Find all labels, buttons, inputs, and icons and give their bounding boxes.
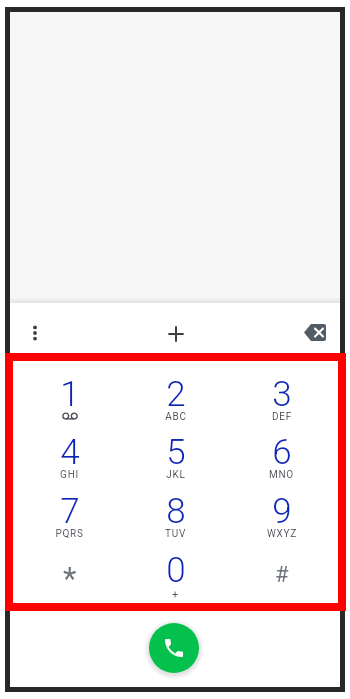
staticText: 6 bbox=[272, 432, 292, 473]
staticText: 9 bbox=[272, 491, 292, 532]
staticText: DEF bbox=[272, 411, 292, 423]
staticText: TUV bbox=[165, 528, 186, 540]
staticText: 3 bbox=[272, 374, 292, 415]
button[interactable]: 3 bbox=[229, 374, 334, 433]
staticText: 5 bbox=[166, 432, 186, 473]
button[interactable]: 9 bbox=[229, 491, 334, 550]
button[interactable]: 4 bbox=[17, 432, 122, 491]
staticText: # bbox=[275, 562, 289, 588]
button[interactable]: 8 bbox=[123, 491, 228, 550]
button[interactable]: 1 bbox=[17, 374, 122, 433]
staticText: 8 bbox=[166, 491, 186, 532]
button[interactable]: 7 bbox=[17, 491, 122, 550]
staticText: 0 bbox=[166, 550, 186, 591]
staticText: JKL bbox=[166, 469, 186, 481]
button[interactable]: Backspace bbox=[298, 315, 332, 349]
button[interactable]: 0 bbox=[123, 550, 228, 609]
staticText: + bbox=[172, 588, 179, 601]
staticText: 7 bbox=[60, 491, 80, 532]
staticText: GHI bbox=[60, 469, 79, 481]
button[interactable]: star bbox=[17, 560, 122, 590]
staticText: 1 bbox=[60, 374, 80, 415]
button[interactable]: 2 bbox=[123, 374, 228, 433]
button[interactable]: pound bbox=[229, 562, 334, 592]
staticText: PQRS bbox=[55, 528, 84, 540]
button[interactable]: 5 bbox=[123, 432, 228, 491]
staticText: MNO bbox=[269, 469, 294, 481]
staticText: 2 bbox=[166, 374, 186, 415]
button[interactable]: Add number bbox=[156, 314, 196, 354]
staticText: 4 bbox=[60, 432, 80, 473]
staticText: * bbox=[63, 560, 77, 590]
staticText: WXYZ bbox=[267, 528, 297, 540]
button[interactable]: More options bbox=[23, 321, 47, 345]
staticText: ABC bbox=[165, 411, 187, 423]
button[interactable]: 6 bbox=[229, 432, 334, 491]
button[interactable]: Call bbox=[149, 623, 199, 673]
